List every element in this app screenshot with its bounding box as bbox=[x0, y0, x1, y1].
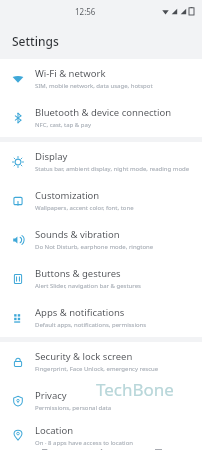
button[interactable]: Buttons & gestures bbox=[0, 259, 202, 298]
staticText: On · 8 apps have access to location bbox=[35, 439, 134, 447]
button[interactable]: Security & lock screen bbox=[0, 342, 202, 381]
button[interactable]: Location bbox=[0, 420, 202, 450]
staticText: Sounds & vibration bbox=[35, 228, 120, 241]
staticText: Permissions, personal data bbox=[35, 404, 112, 412]
staticText: SIM, mobile network, data usage, hotspot bbox=[35, 82, 153, 90]
button[interactable]: Display bbox=[0, 142, 202, 181]
button[interactable]: Wi-Fi & network bbox=[0, 59, 202, 98]
staticText: Location bbox=[35, 424, 74, 437]
staticText: Apps & notifications bbox=[35, 306, 125, 319]
staticText: Wi-Fi & network bbox=[35, 67, 106, 80]
staticText: Fingerprint, Face Unlock, emergency resc… bbox=[35, 365, 159, 373]
button[interactable]: Apps & notifications bbox=[0, 298, 202, 337]
staticText: Status bar, ambient display, night mode,… bbox=[35, 165, 190, 173]
button[interactable]: Privacy bbox=[0, 381, 202, 420]
staticText: Do Not Disturb, earphone mode, ringtone bbox=[35, 243, 154, 251]
staticText: Customization bbox=[35, 189, 100, 202]
staticText: TechBone bbox=[96, 378, 174, 401]
staticText: Privacy bbox=[35, 389, 67, 402]
staticText: Wallpapers, accent color, font, tone bbox=[35, 204, 134, 212]
staticText: Settings bbox=[12, 33, 59, 49]
staticText: 12:56 bbox=[75, 6, 96, 17]
staticText: Security & lock screen bbox=[35, 350, 133, 363]
staticText: NFC, cast, tap & pay bbox=[35, 121, 91, 129]
button[interactable]: Sounds & vibration bbox=[0, 220, 202, 259]
staticText: Alert Slider, navigation bar & gestures bbox=[35, 282, 141, 290]
staticText: Bluetooth & device connection bbox=[35, 106, 172, 119]
button[interactable]: Bluetooth & device connection bbox=[0, 98, 202, 137]
staticText: Display bbox=[35, 150, 68, 163]
button[interactable]: Customization bbox=[0, 181, 202, 220]
staticText: Default apps, notifications, permissions bbox=[35, 321, 147, 329]
staticText: Buttons & gestures bbox=[35, 267, 121, 280]
